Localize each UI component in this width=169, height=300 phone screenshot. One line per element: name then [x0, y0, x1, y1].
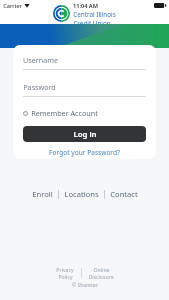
staticText: Central Illinois: [73, 10, 116, 19]
staticText: Contact: [110, 189, 138, 199]
button[interactable]: Forgot your Password?: [46, 147, 123, 158]
staticText: Remember Account: [31, 108, 98, 118]
staticText: Locations: [64, 189, 99, 199]
staticText: Disclosure: [88, 273, 114, 280]
button[interactable]: Privacy: [49, 266, 81, 280]
button[interactable]: Enroll: [27, 187, 58, 201]
staticText: Forgot your Password?: [49, 148, 120, 157]
staticText: Password: [23, 82, 56, 92]
button[interactable]: Password: [23, 82, 146, 97]
staticText: Online: [93, 266, 110, 273]
staticText: Username: [23, 55, 58, 65]
staticText: Policy: [58, 273, 73, 280]
button[interactable]: Locations: [59, 187, 104, 201]
staticText: © Sharetec: [72, 282, 98, 289]
staticText: 11:04 AM: [73, 2, 98, 10]
staticText: Privacy: [56, 266, 74, 273]
staticText: Log in: [73, 129, 97, 140]
button[interactable]: Online: [82, 266, 120, 280]
staticText: Carrier: [3, 2, 22, 9]
button[interactable]: Log in: [23, 126, 146, 142]
button[interactable]: Remember Account: [23, 107, 98, 119]
staticText: Credit Union: [73, 19, 111, 24]
button[interactable]: Username: [23, 55, 146, 70]
staticText: Enroll: [32, 189, 53, 199]
button[interactable]: Contact: [105, 187, 143, 201]
